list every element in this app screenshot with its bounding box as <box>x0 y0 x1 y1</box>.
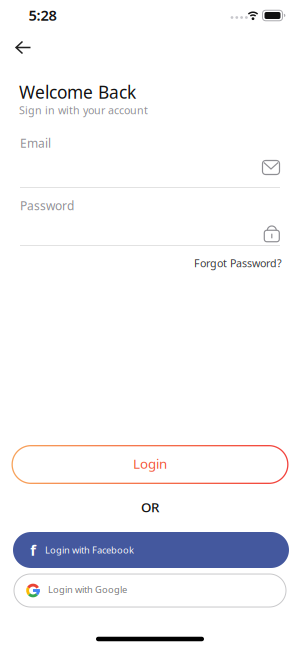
staticText: f <box>30 540 36 560</box>
button[interactable]: f <box>13 532 289 568</box>
button[interactable]: Forgot Password? <box>194 256 282 270</box>
staticText: OR <box>141 498 159 516</box>
button[interactable]: Login <box>11 445 288 484</box>
staticText: Password <box>20 197 74 213</box>
button[interactable]: Back <box>9 37 37 57</box>
staticText: Login <box>133 455 167 472</box>
staticText: Login with Google <box>48 583 127 596</box>
staticText: Welcome Back <box>19 80 136 103</box>
button[interactable]: Login with Google <box>14 574 286 607</box>
staticText: Login with Facebook <box>45 544 134 556</box>
staticText: Forgot Password? <box>194 256 282 270</box>
staticText: Email <box>20 135 51 151</box>
staticText: Sign in with your account <box>19 103 148 117</box>
staticText: 5:28 <box>28 5 56 25</box>
